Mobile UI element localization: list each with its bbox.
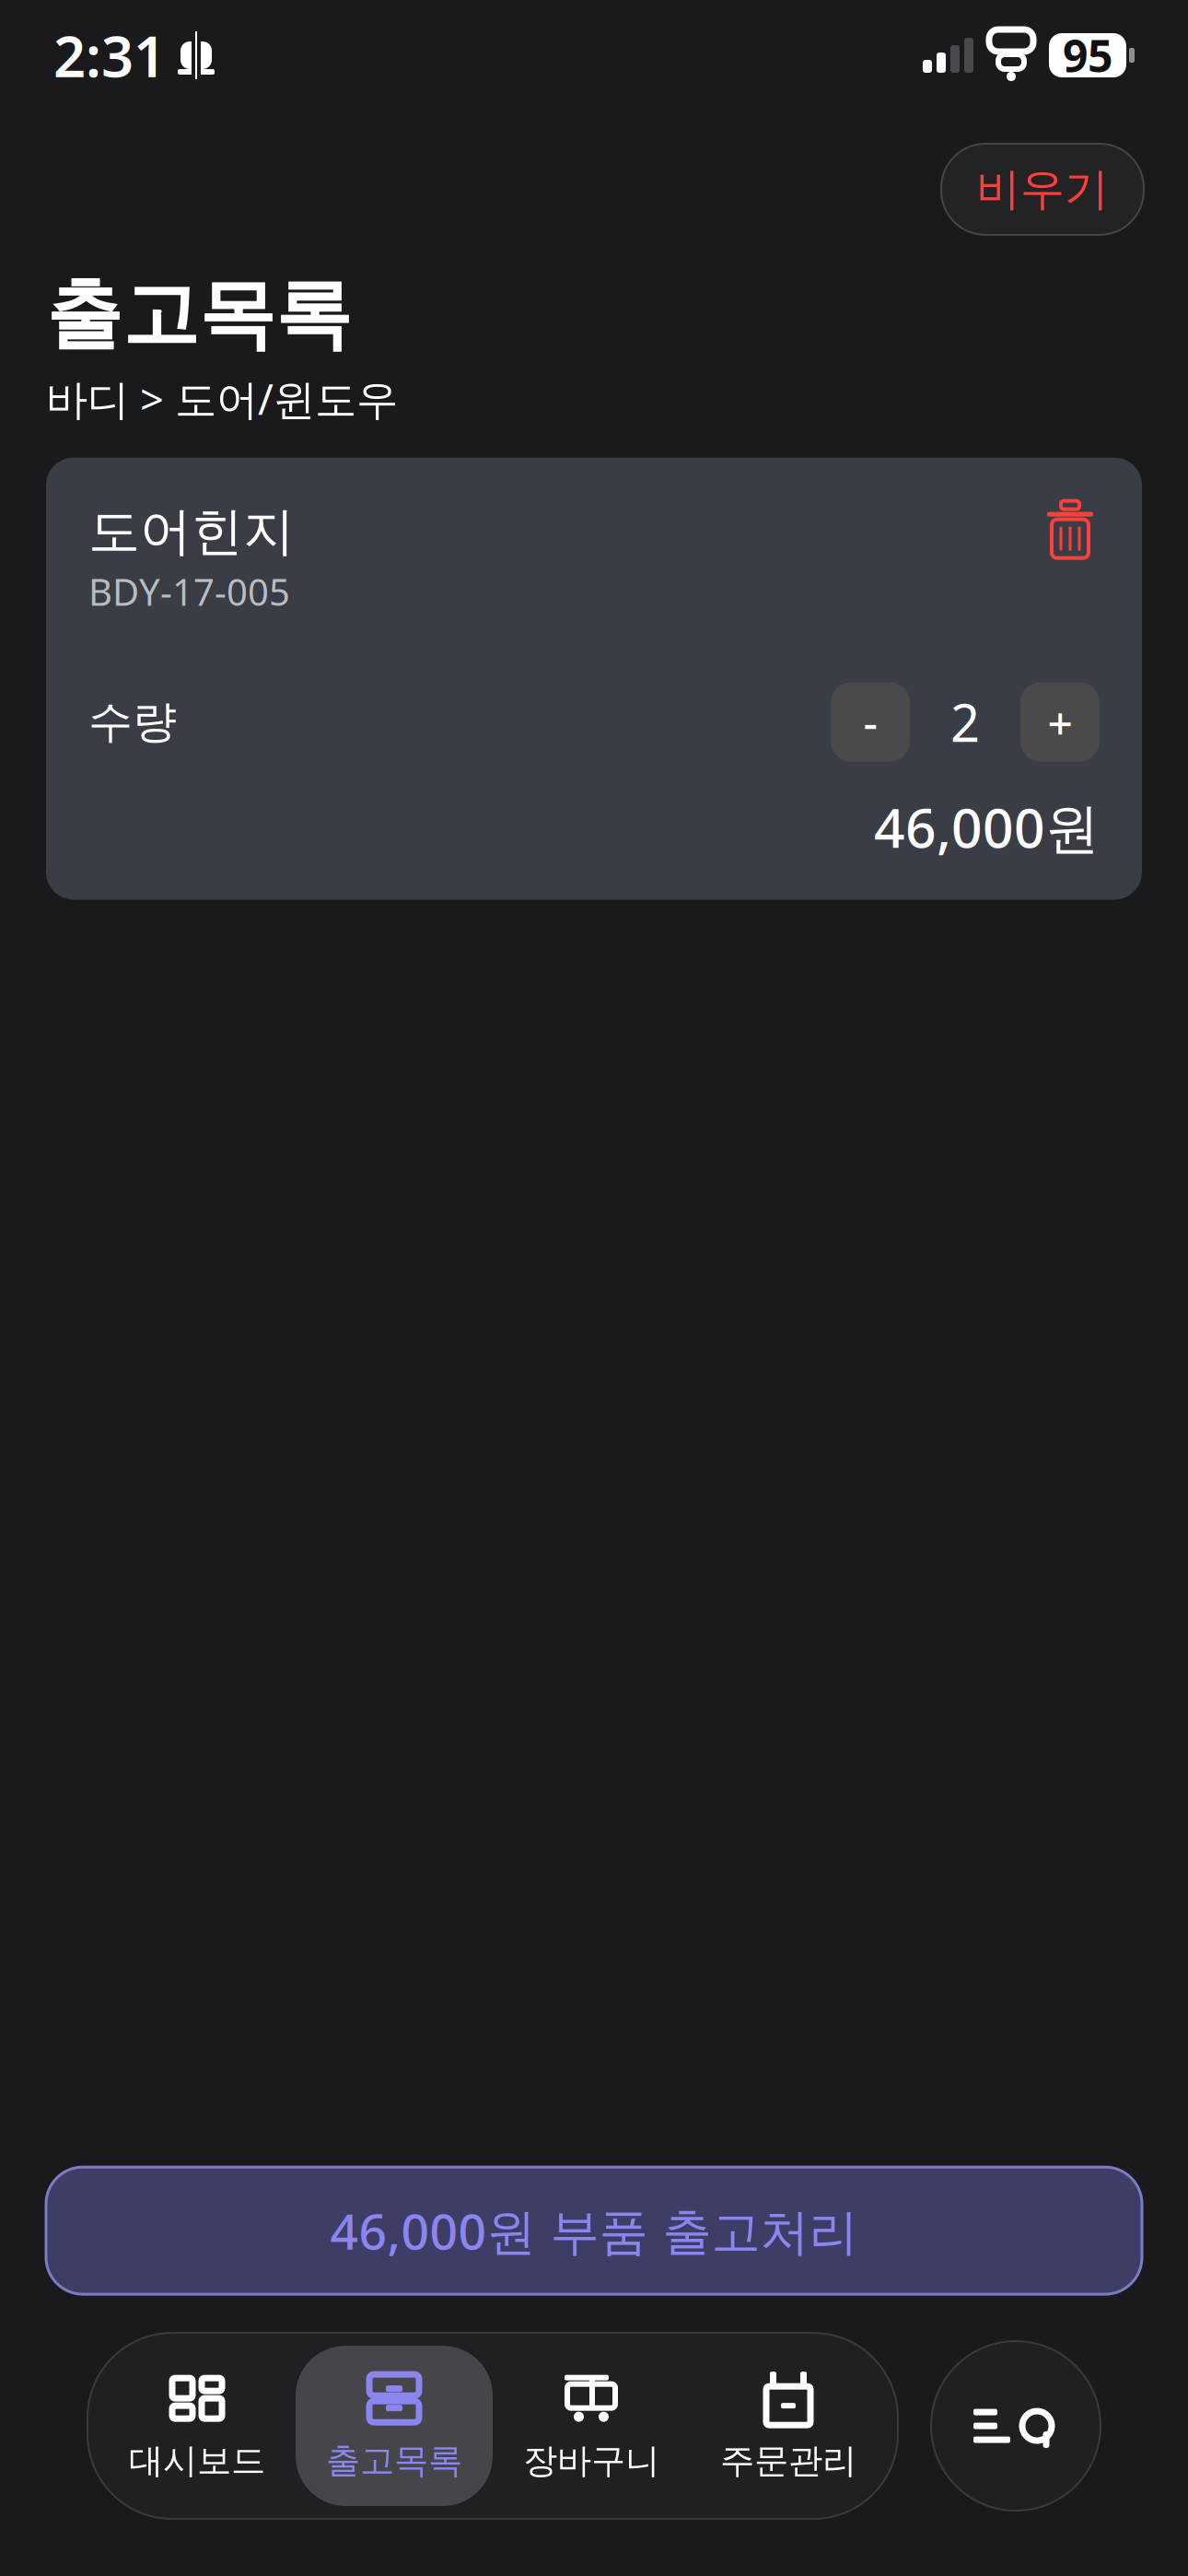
staticText: 장바구니	[523, 2440, 659, 2482]
button[interactable]: 장바구니	[493, 2346, 690, 2506]
staticText: 수량	[88, 695, 177, 749]
staticText: 46,000원 부품 출고처리	[330, 2198, 858, 2263]
staticText: 출고목록	[46, 268, 352, 362]
staticText: BDY-17-005	[88, 567, 290, 616]
staticText: +	[1048, 693, 1072, 751]
button[interactable]: 검색	[931, 2341, 1101, 2511]
button[interactable]: 46,000원 부품 출고처리	[46, 2167, 1142, 2294]
staticText: 46,000원	[874, 791, 1100, 863]
button[interactable]: 수량 감소	[831, 682, 910, 762]
button[interactable]: 주문관리	[690, 2346, 887, 2506]
staticText: 2	[950, 688, 980, 756]
staticText: 대시보드	[129, 2440, 265, 2482]
staticText: 도어힌지	[88, 500, 295, 563]
button[interactable]: 삭제	[1041, 500, 1100, 559]
staticText: 주문관리	[720, 2440, 856, 2482]
staticText: 비우기	[976, 162, 1109, 217]
staticText: 바디 > 도어/윈도우	[46, 371, 398, 426]
button[interactable]: 수량 증가	[1020, 682, 1100, 762]
staticText: -	[863, 693, 877, 751]
staticText: 출고목록	[326, 2440, 462, 2482]
button[interactable]: 비우기	[941, 144, 1144, 235]
staticText: 95	[1063, 26, 1112, 85]
staticText: 2:31	[53, 18, 166, 93]
button[interactable]: 대시보드	[99, 2346, 296, 2506]
button[interactable]: 출고목록	[296, 2346, 493, 2506]
